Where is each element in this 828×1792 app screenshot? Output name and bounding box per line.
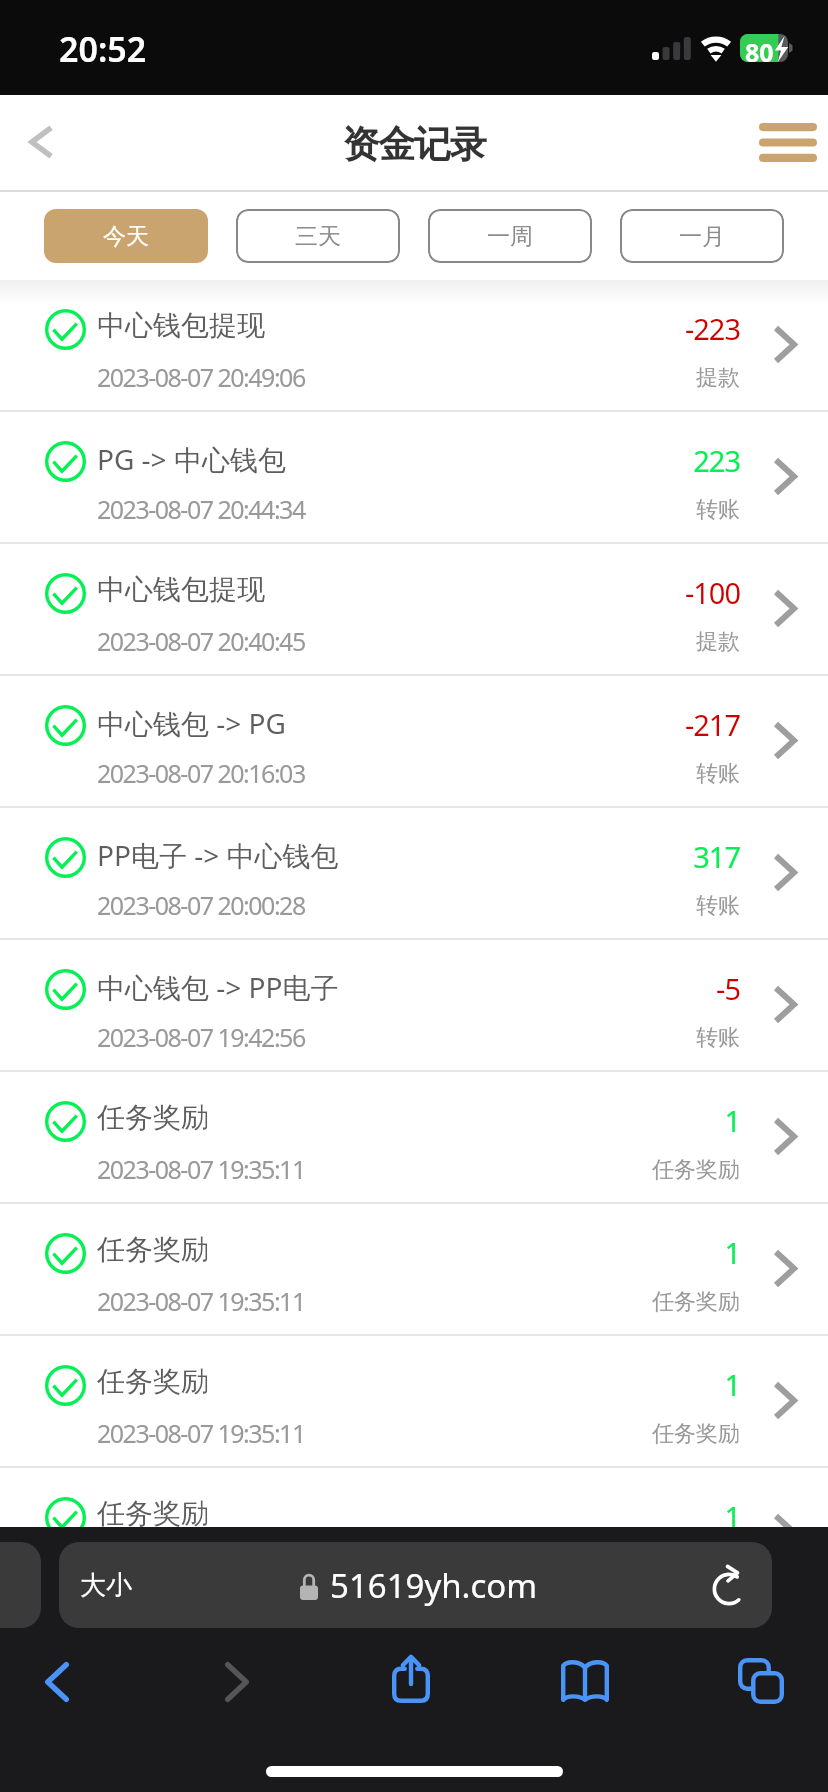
staticText: 2023-08-07 20:40:45 [97, 624, 305, 658]
staticText: 中心钱包提现 [97, 308, 265, 343]
button[interactable]: PG -> 中心钱包 [0, 412, 828, 544]
staticText: 1 [440, 1365, 740, 1404]
staticText: 转账 [440, 496, 740, 524]
staticText: -217 [440, 705, 740, 744]
button[interactable]: 中心钱包提现 [0, 544, 828, 676]
button[interactable]: 中心钱包 -> PP电子 [0, 940, 828, 1072]
staticText: 三天 [295, 222, 341, 251]
staticText: 一月 [679, 222, 725, 251]
button[interactable]: Bookmarks [550, 1646, 620, 1716]
staticText: 大小 [80, 1569, 132, 1602]
staticText: PP电子 -> 中心钱包 [97, 836, 339, 874]
button[interactable]: Back [22, 1647, 92, 1717]
button[interactable]: 中心钱包提现 [0, 280, 828, 412]
staticText: 任务奖励 [97, 1232, 209, 1267]
staticText: 任务奖励 [440, 1420, 740, 1448]
button[interactable]: Forward [202, 1647, 272, 1717]
staticText: 资金记录 [0, 121, 828, 168]
staticText: 转账 [440, 1024, 740, 1052]
staticText: 1 [440, 1101, 740, 1140]
staticText: 任务奖励 [97, 1100, 209, 1135]
staticText: 2023-08-07 19:35:11 [97, 1284, 305, 1318]
staticText: 转账 [440, 892, 740, 920]
staticText: 转账 [440, 760, 740, 788]
staticText: 中心钱包提现 [97, 572, 265, 607]
staticText: 一周 [487, 222, 533, 251]
button[interactable]: 今天 [44, 209, 208, 263]
button[interactable]: Share [376, 1643, 446, 1713]
staticText: 任务奖励 [440, 1156, 740, 1184]
staticText: 2023-08-07 20:00:28 [97, 888, 305, 922]
staticText: 2023-08-07 20:49:06 [97, 360, 305, 394]
staticText: 今天 [103, 222, 149, 251]
staticText: 1 [440, 1497, 740, 1536]
button[interactable]: 大小 [59, 1542, 772, 1628]
button[interactable]: Menu [748, 105, 828, 180]
staticText: 2023-08-07 19:35:11 [97, 1152, 305, 1186]
button[interactable]: 一周 [428, 209, 592, 263]
button[interactable]: 任务奖励 [0, 1072, 828, 1204]
button[interactable]: 一月 [620, 209, 784, 263]
staticText: 1 [440, 1233, 740, 1272]
button[interactable]: 中心钱包 -> PG [0, 676, 828, 808]
staticText: 任务奖励 [97, 1364, 209, 1399]
staticText: 20:52 [59, 26, 147, 72]
staticText: 2023-08-07 20:16:03 [97, 756, 305, 790]
staticText: 任务奖励 [97, 1496, 209, 1531]
button[interactable]: Reload [695, 1548, 765, 1618]
button[interactable]: 任务奖励 [0, 1204, 828, 1336]
staticText: 任务奖励 [440, 1288, 740, 1316]
button[interactable]: Back [6, 107, 76, 177]
staticText: 中心钱包 -> PG [97, 704, 286, 742]
staticText: 任务奖励 [440, 1552, 740, 1580]
button[interactable]: 任务奖励 [0, 1468, 828, 1600]
staticText: 2023-08-07 19:35:11 [97, 1548, 305, 1582]
staticText: -5 [440, 969, 740, 1008]
staticText: 提款 [440, 628, 740, 656]
staticText: 51619yh.com [330, 1563, 538, 1608]
staticText: 2023-08-07 20:44:34 [97, 492, 305, 526]
staticText: 中心钱包 -> PP电子 [97, 968, 339, 1006]
staticText: 2023-08-07 19:42:56 [97, 1020, 305, 1054]
button[interactable]: 任务奖励 [0, 1336, 828, 1468]
button[interactable]: 三天 [236, 209, 400, 263]
staticText: -223 [440, 309, 740, 348]
button[interactable]: PP电子 -> 中心钱包 [0, 808, 828, 940]
staticText: 317 [440, 837, 740, 876]
button[interactable]: Tabs [726, 1646, 796, 1716]
staticText: 提款 [440, 364, 740, 392]
staticText: -100 [440, 573, 740, 612]
staticText: 80 [745, 35, 774, 69]
staticText: 223 [440, 441, 740, 480]
staticText: 2023-08-07 19:35:11 [97, 1416, 305, 1450]
staticText: PG -> 中心钱包 [97, 440, 286, 478]
